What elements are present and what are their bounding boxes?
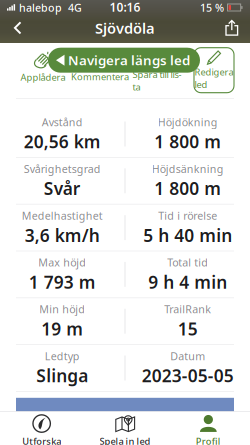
staticText: 10:16 xyxy=(109,0,140,15)
button[interactable]: Redigera led xyxy=(194,48,234,93)
staticText: Svår xyxy=(44,177,81,200)
staticText: 1 793 m xyxy=(29,270,96,293)
staticText: Spara till lis- ta xyxy=(132,68,181,93)
button[interactable]: Back xyxy=(3,14,33,42)
staticText: TrailRank xyxy=(164,302,211,316)
staticText: Redigera led xyxy=(194,66,233,91)
staticText: Avstånd xyxy=(42,115,83,129)
staticText: 2023-05-05 xyxy=(142,364,234,387)
staticText: 15 % xyxy=(200,0,224,15)
staticText: 3,6 km/h xyxy=(25,224,100,247)
staticText: Datum xyxy=(170,349,205,363)
staticText: Navigera längs led xyxy=(68,51,190,69)
staticText: Tid i rörelse xyxy=(158,208,217,223)
staticText: Sjövdöla xyxy=(95,18,155,38)
button[interactable]: Profil xyxy=(167,414,250,445)
button[interactable]: Kommentera xyxy=(70,51,130,83)
staticText: Profil xyxy=(196,435,221,445)
staticText: 1 800 m xyxy=(154,177,221,200)
staticText: halebop 4G xyxy=(16,0,82,15)
button[interactable]: Spara till lis- ta xyxy=(127,49,187,93)
staticText: 5 h 40 min xyxy=(143,224,232,247)
staticText: 15 xyxy=(178,317,198,340)
button[interactable]: Navigera längs led xyxy=(48,48,200,73)
staticText: 1 800 m xyxy=(154,130,221,153)
staticText: Höjdökning xyxy=(158,115,218,129)
staticText: Slinga xyxy=(36,364,88,387)
staticText: Höjdsänkning xyxy=(152,162,224,176)
button[interactable]: Utforska xyxy=(0,414,83,445)
staticText: Max höjd xyxy=(38,255,86,269)
staticText: Utforska xyxy=(22,435,61,445)
staticText: Svårighetsgrad xyxy=(24,162,101,176)
staticText: Spela in led xyxy=(99,435,150,445)
staticText: Applådera xyxy=(20,71,65,83)
button[interactable]: Share xyxy=(217,14,247,42)
staticText: 9 h 4 min xyxy=(148,270,227,293)
button[interactable]: Spela in led xyxy=(83,414,167,445)
staticText: Total tid xyxy=(167,255,208,269)
staticText: Medelhastighet xyxy=(22,208,103,223)
staticText: 19 m xyxy=(41,317,83,340)
staticText: Ledtyp xyxy=(45,349,80,363)
staticText: Min höjd xyxy=(39,302,85,316)
button[interactable]: Applådera xyxy=(13,51,73,83)
staticText: Kommentera xyxy=(71,70,129,83)
staticText: 20,56 km xyxy=(24,130,101,153)
